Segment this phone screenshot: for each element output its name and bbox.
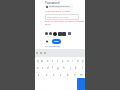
- button[interactable]: q: [35, 57, 40, 64]
- staticText: x: [46, 73, 48, 77]
- button[interactable]: s: [40, 64, 45, 71]
- button[interactable]: k: [73, 64, 79, 71]
- staticText: Password: [45, 1, 60, 5]
- staticText: a: [37, 66, 39, 70]
- button[interactable]: r: [50, 57, 55, 64]
- staticText: p: [82, 59, 84, 63]
- button[interactable]: h: [61, 64, 67, 71]
- staticText: o: [77, 59, 79, 63]
- staticText: n: [74, 73, 76, 77]
- button[interactable]: a: [35, 64, 40, 71]
- staticText: d: [47, 66, 49, 70]
- button[interactable]: v: [57, 71, 64, 78]
- staticText: f: [52, 66, 53, 70]
- button[interactable]: u: [65, 57, 70, 64]
- button[interactable]: b: [64, 71, 71, 78]
- staticText: u: [67, 59, 69, 63]
- staticText: i: [72, 59, 73, 63]
- button[interactable]: l: [79, 64, 85, 71]
- button[interactable]: y: [60, 57, 65, 64]
- staticText: y: [62, 59, 64, 63]
- button[interactable]: Play audio: [46, 40, 49, 43]
- button[interactable]: o: [75, 57, 80, 64]
- staticText: Try another way: [45, 45, 61, 48]
- staticText: above: [45, 23, 51, 26]
- staticText: l: [82, 66, 83, 70]
- button[interactable]: Enter the text you hear: [45, 14, 79, 20]
- button[interactable]: t: [55, 57, 60, 64]
- staticText: c: [53, 73, 55, 77]
- button[interactable]: p: [80, 57, 85, 64]
- staticText: Enter the characters you see in the imag…: [45, 20, 84, 23]
- button[interactable]: Next: [52, 39, 61, 44]
- staticText: e: [47, 59, 49, 63]
- button[interactable]: m: [78, 71, 85, 78]
- staticText: s: [42, 66, 44, 70]
- button[interactable]: Enter: [77, 78, 85, 90]
- button[interactable]: z: [35, 71, 43, 78]
- staticText: r: [52, 59, 54, 63]
- staticText: Enter the text you hear: [47, 16, 69, 19]
- staticText: t: [57, 59, 58, 63]
- staticText: v: [60, 73, 62, 77]
- button[interactable]: x: [43, 71, 50, 78]
- button[interactable]: e: [45, 57, 50, 64]
- button[interactable]: d: [45, 64, 50, 71]
- button[interactable]: n: [71, 71, 78, 78]
- staticText: h: [63, 66, 65, 70]
- staticText: m: [80, 73, 83, 77]
- button[interactable]: w: [40, 57, 45, 64]
- staticText: z: [38, 73, 40, 77]
- button[interactable]: c: [50, 71, 57, 78]
- staticText: q: [37, 59, 39, 63]
- button[interactable]: f: [50, 64, 55, 71]
- staticText: j: [70, 66, 71, 70]
- button[interactable]: g: [55, 64, 61, 71]
- button[interactable]: i: [70, 57, 75, 64]
- staticText: k: [75, 66, 77, 70]
- staticText: Next: [54, 40, 59, 43]
- staticText: b: [67, 73, 69, 77]
- button[interactable]: j: [67, 64, 73, 71]
- button[interactable]: someone@gmail.com: [45, 5, 73, 8]
- staticText: g: [57, 66, 59, 70]
- staticText: w: [41, 59, 44, 63]
- staticText: Wrong password. Try again: [45, 10, 71, 13]
- button[interactable]: Try another way: [45, 45, 61, 48]
- staticText: someone@gmail.com: [49, 5, 70, 8]
